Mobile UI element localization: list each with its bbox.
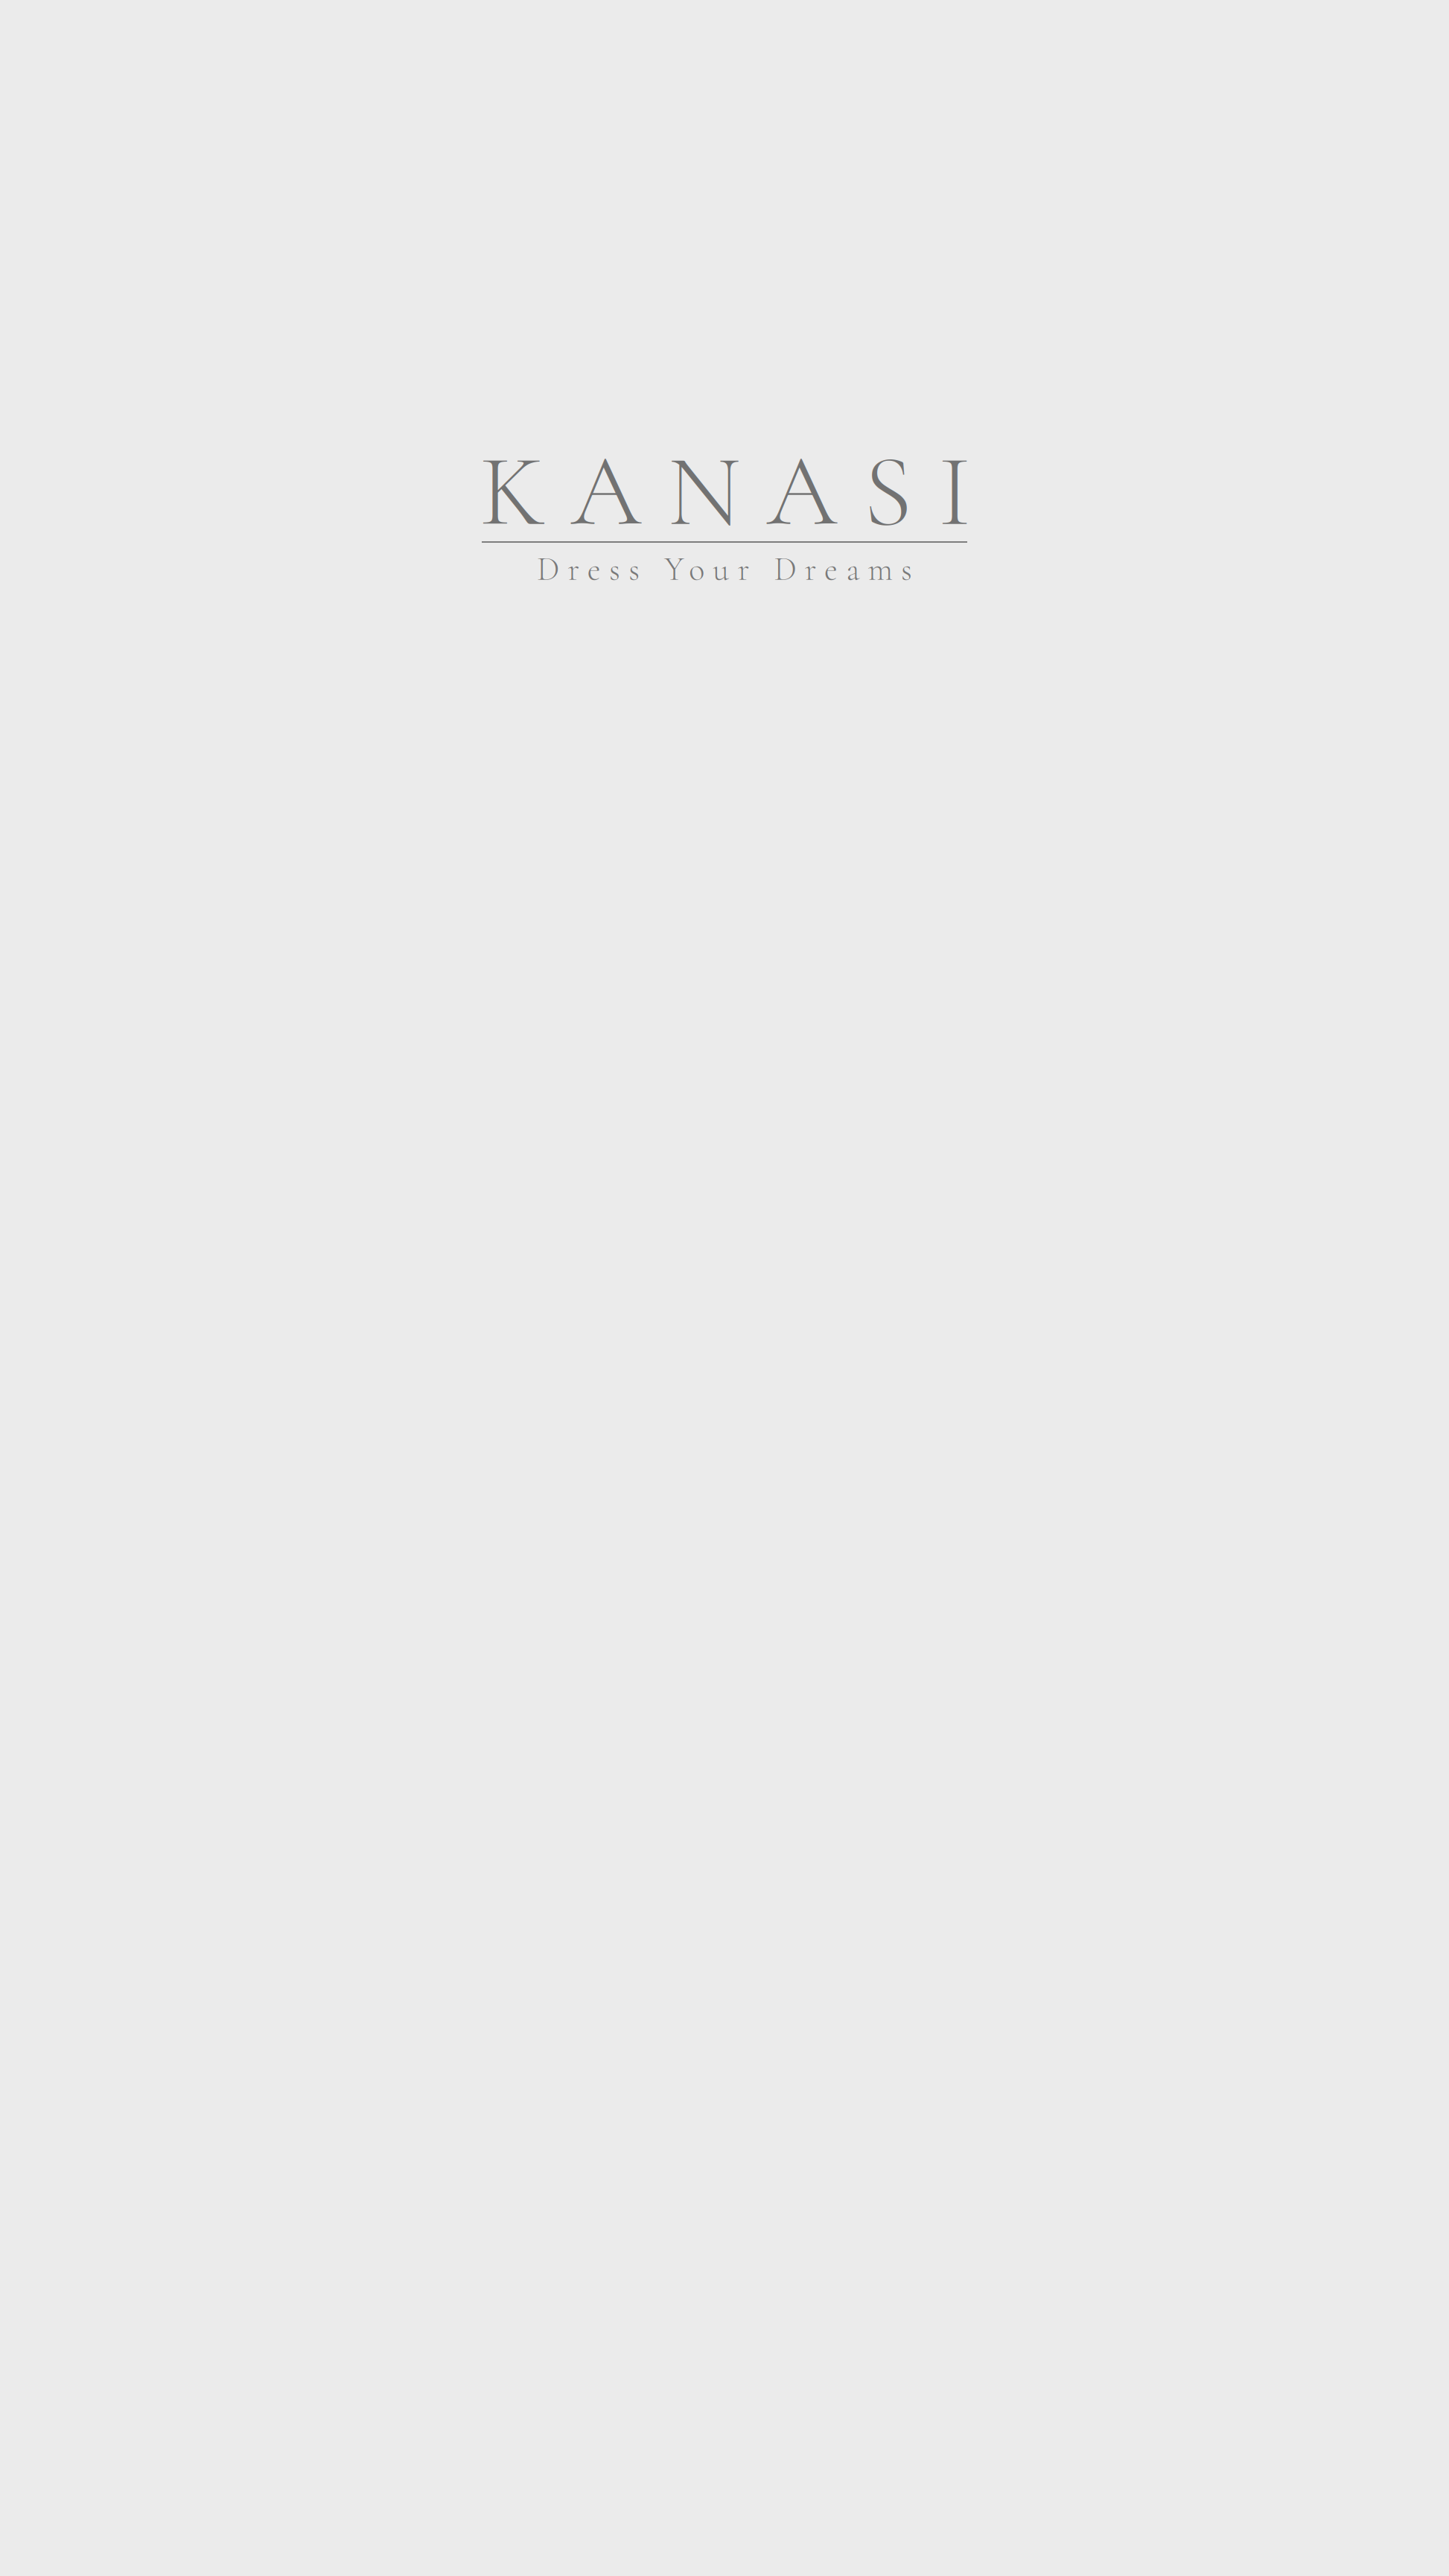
staticText: Dress Your Dreams xyxy=(537,549,912,589)
staticText: KANASI xyxy=(480,430,971,553)
